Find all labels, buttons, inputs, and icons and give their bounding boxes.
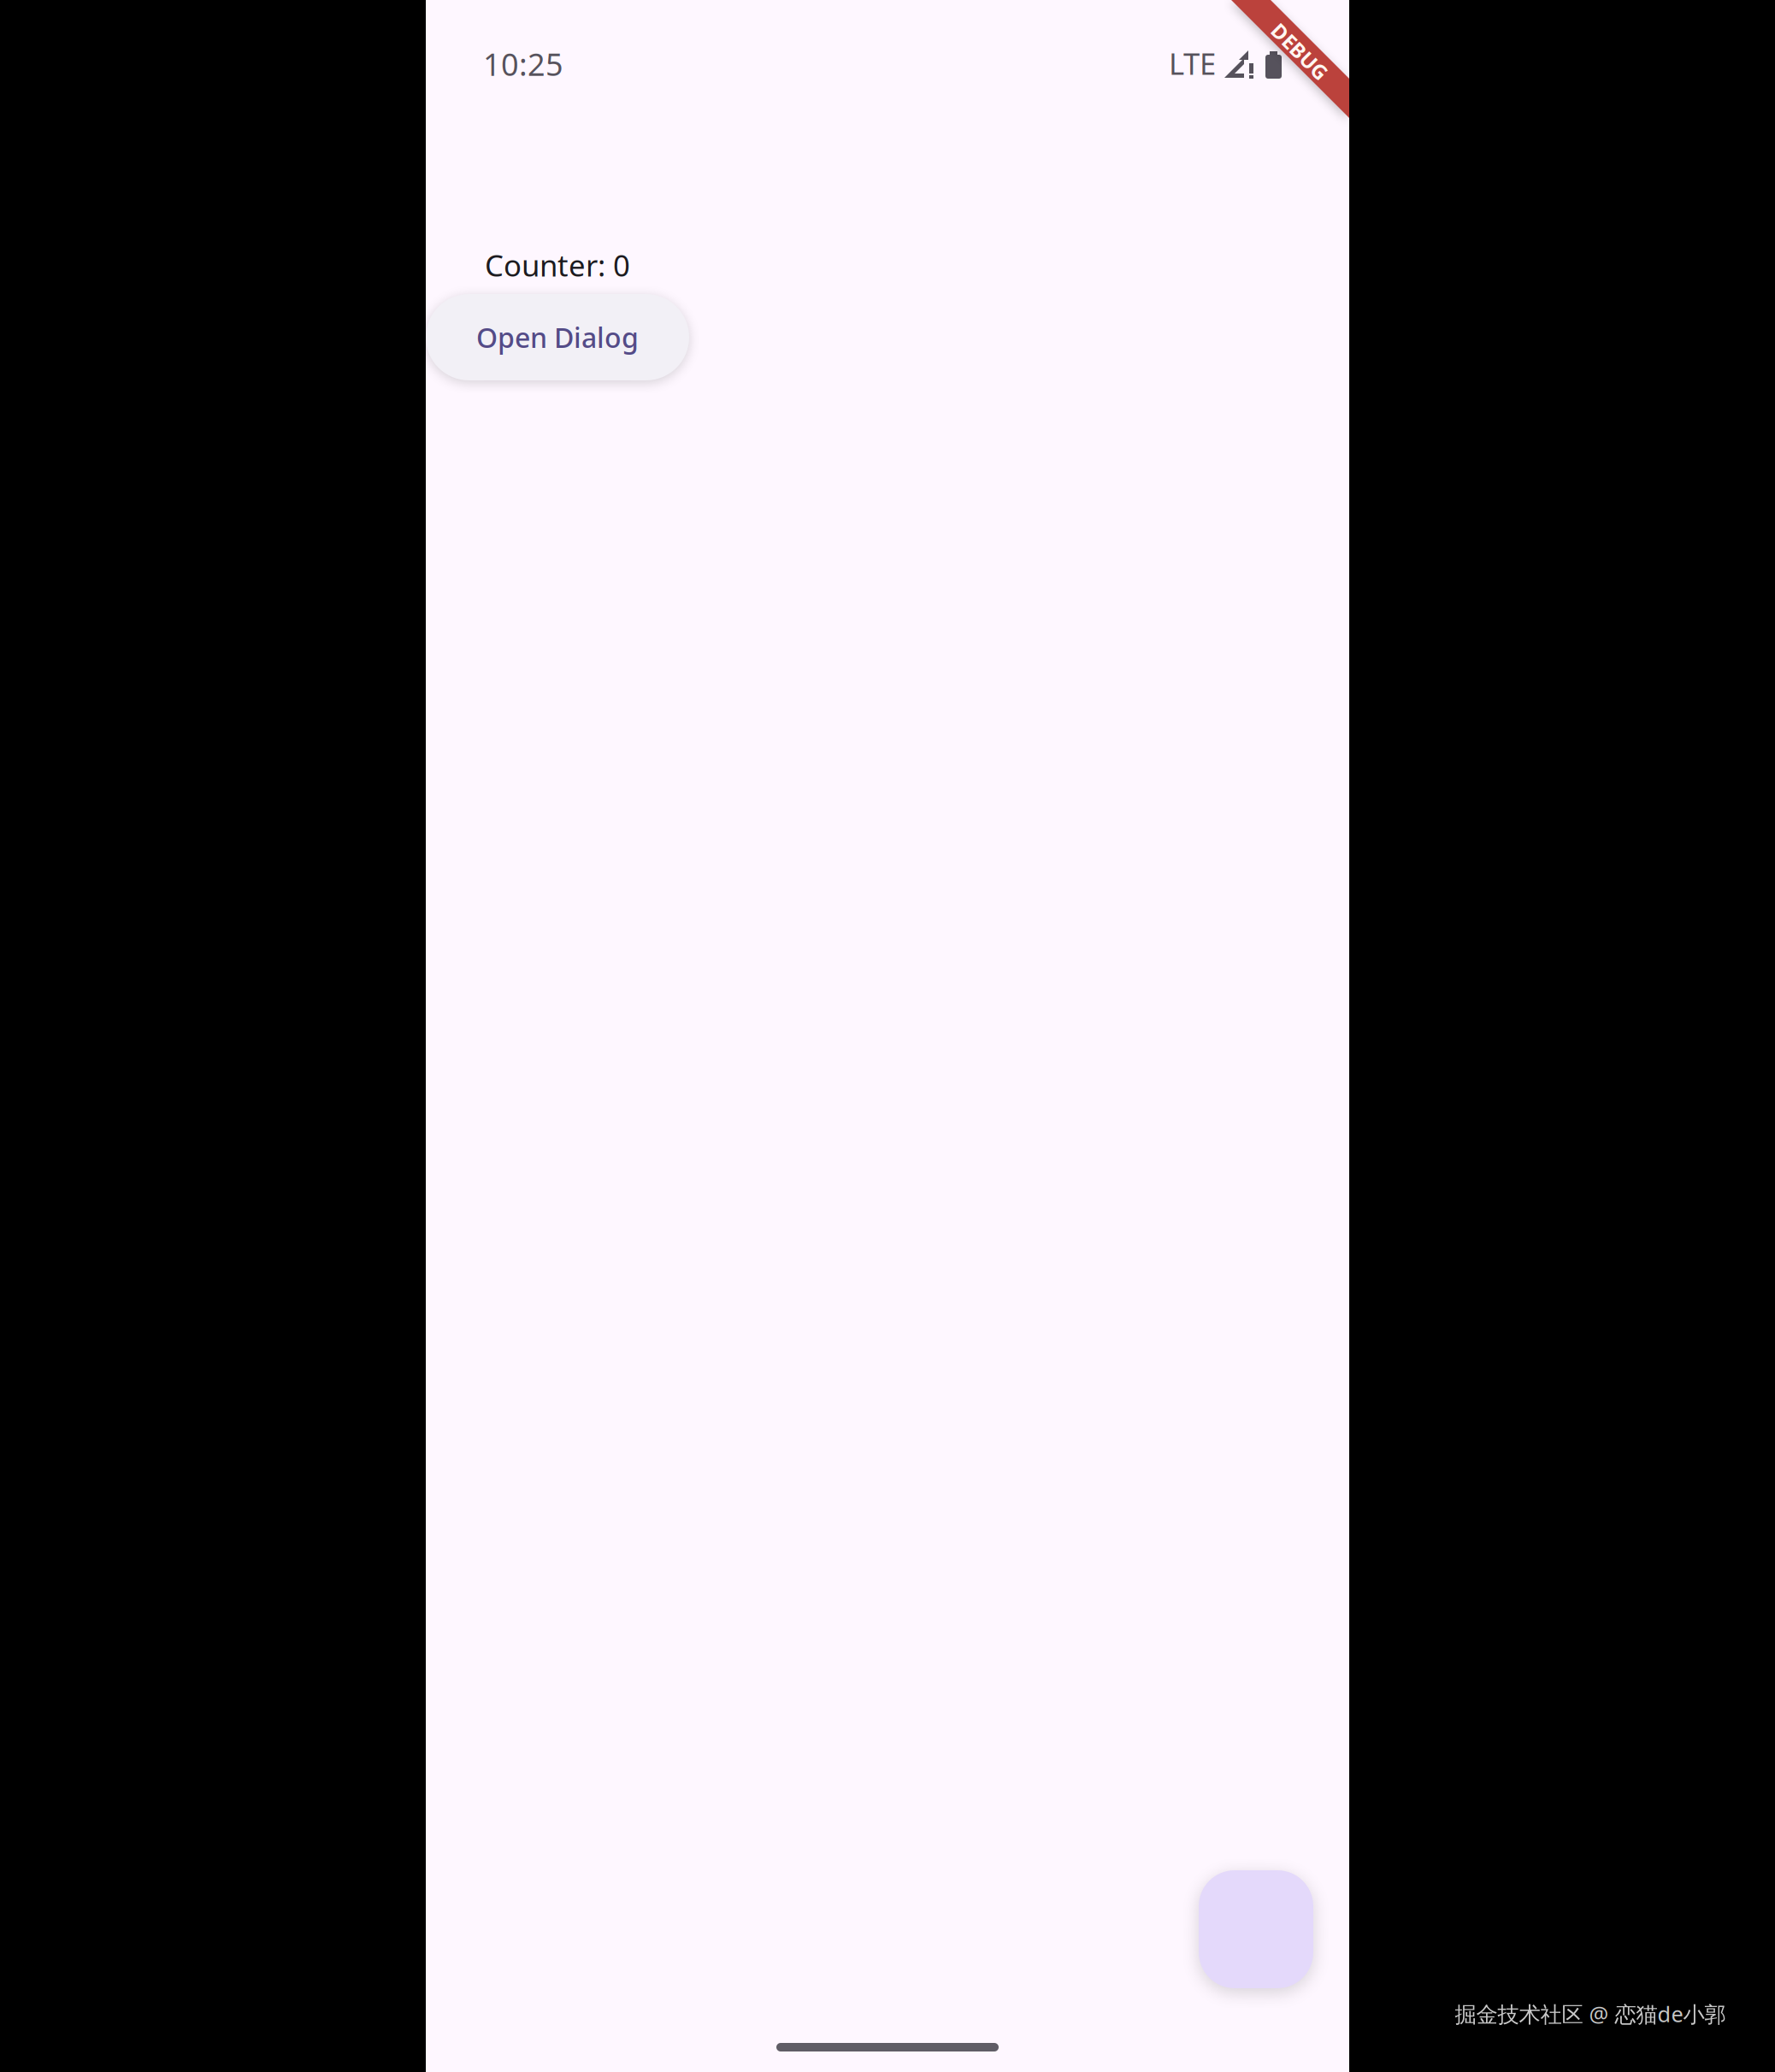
staticText: LTE bbox=[1169, 44, 1216, 83]
staticText: 掘金技术社区 @ 恋猫de小郭 bbox=[1455, 2000, 1726, 2028]
staticText: Open Dialog bbox=[476, 319, 639, 355]
staticText: DEBUG bbox=[1265, 38, 1335, 65]
button[interactable]: Open Dialog bbox=[426, 294, 689, 380]
button[interactable]: Add bbox=[1199, 1870, 1313, 1988]
staticText: Counter: 0 bbox=[485, 245, 630, 285]
staticText: 10:25 bbox=[483, 44, 563, 84]
